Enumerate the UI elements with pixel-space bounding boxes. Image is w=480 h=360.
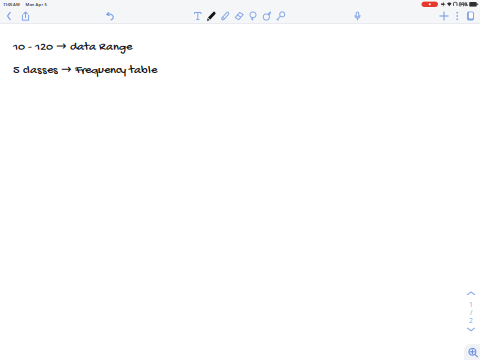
button[interactable]: Text tool <box>191 9 204 23</box>
button[interactable]: Undo <box>104 9 118 23</box>
button[interactable]: Add page <box>437 9 451 23</box>
button[interactable]: Page thumbnails <box>464 9 477 23</box>
button[interactable]: More options <box>452 9 463 23</box>
button[interactable]: Eraser tool <box>233 9 246 23</box>
staticText: 1 <box>469 300 473 309</box>
staticText: / <box>470 308 472 317</box>
button[interactable]: Pen tool <box>205 9 218 23</box>
button[interactable]: Share <box>19 9 32 23</box>
button[interactable]: Back <box>3 9 15 23</box>
staticText: 2 <box>469 316 473 325</box>
button[interactable]: Laser pointer <box>274 9 287 23</box>
staticText: 10 - 120 → data Range <box>13 38 132 55</box>
staticText: 5 classes → Frequency table <box>13 61 157 78</box>
button[interactable]: Previous page <box>463 289 479 298</box>
button[interactable]: Record audio <box>350 9 364 23</box>
button[interactable]: Lasso tool <box>246 9 259 23</box>
button[interactable]: Shape tool <box>260 9 273 23</box>
staticText: Mon Apr 5 <box>25 2 46 7</box>
button[interactable]: Page 1 of 2 <box>463 300 479 325</box>
button[interactable]: Next page <box>463 325 479 334</box>
button[interactable]: Zoom <box>464 344 480 360</box>
staticText: 11:05 AM <box>3 2 20 7</box>
button[interactable]: Highlighter tool <box>219 9 232 23</box>
